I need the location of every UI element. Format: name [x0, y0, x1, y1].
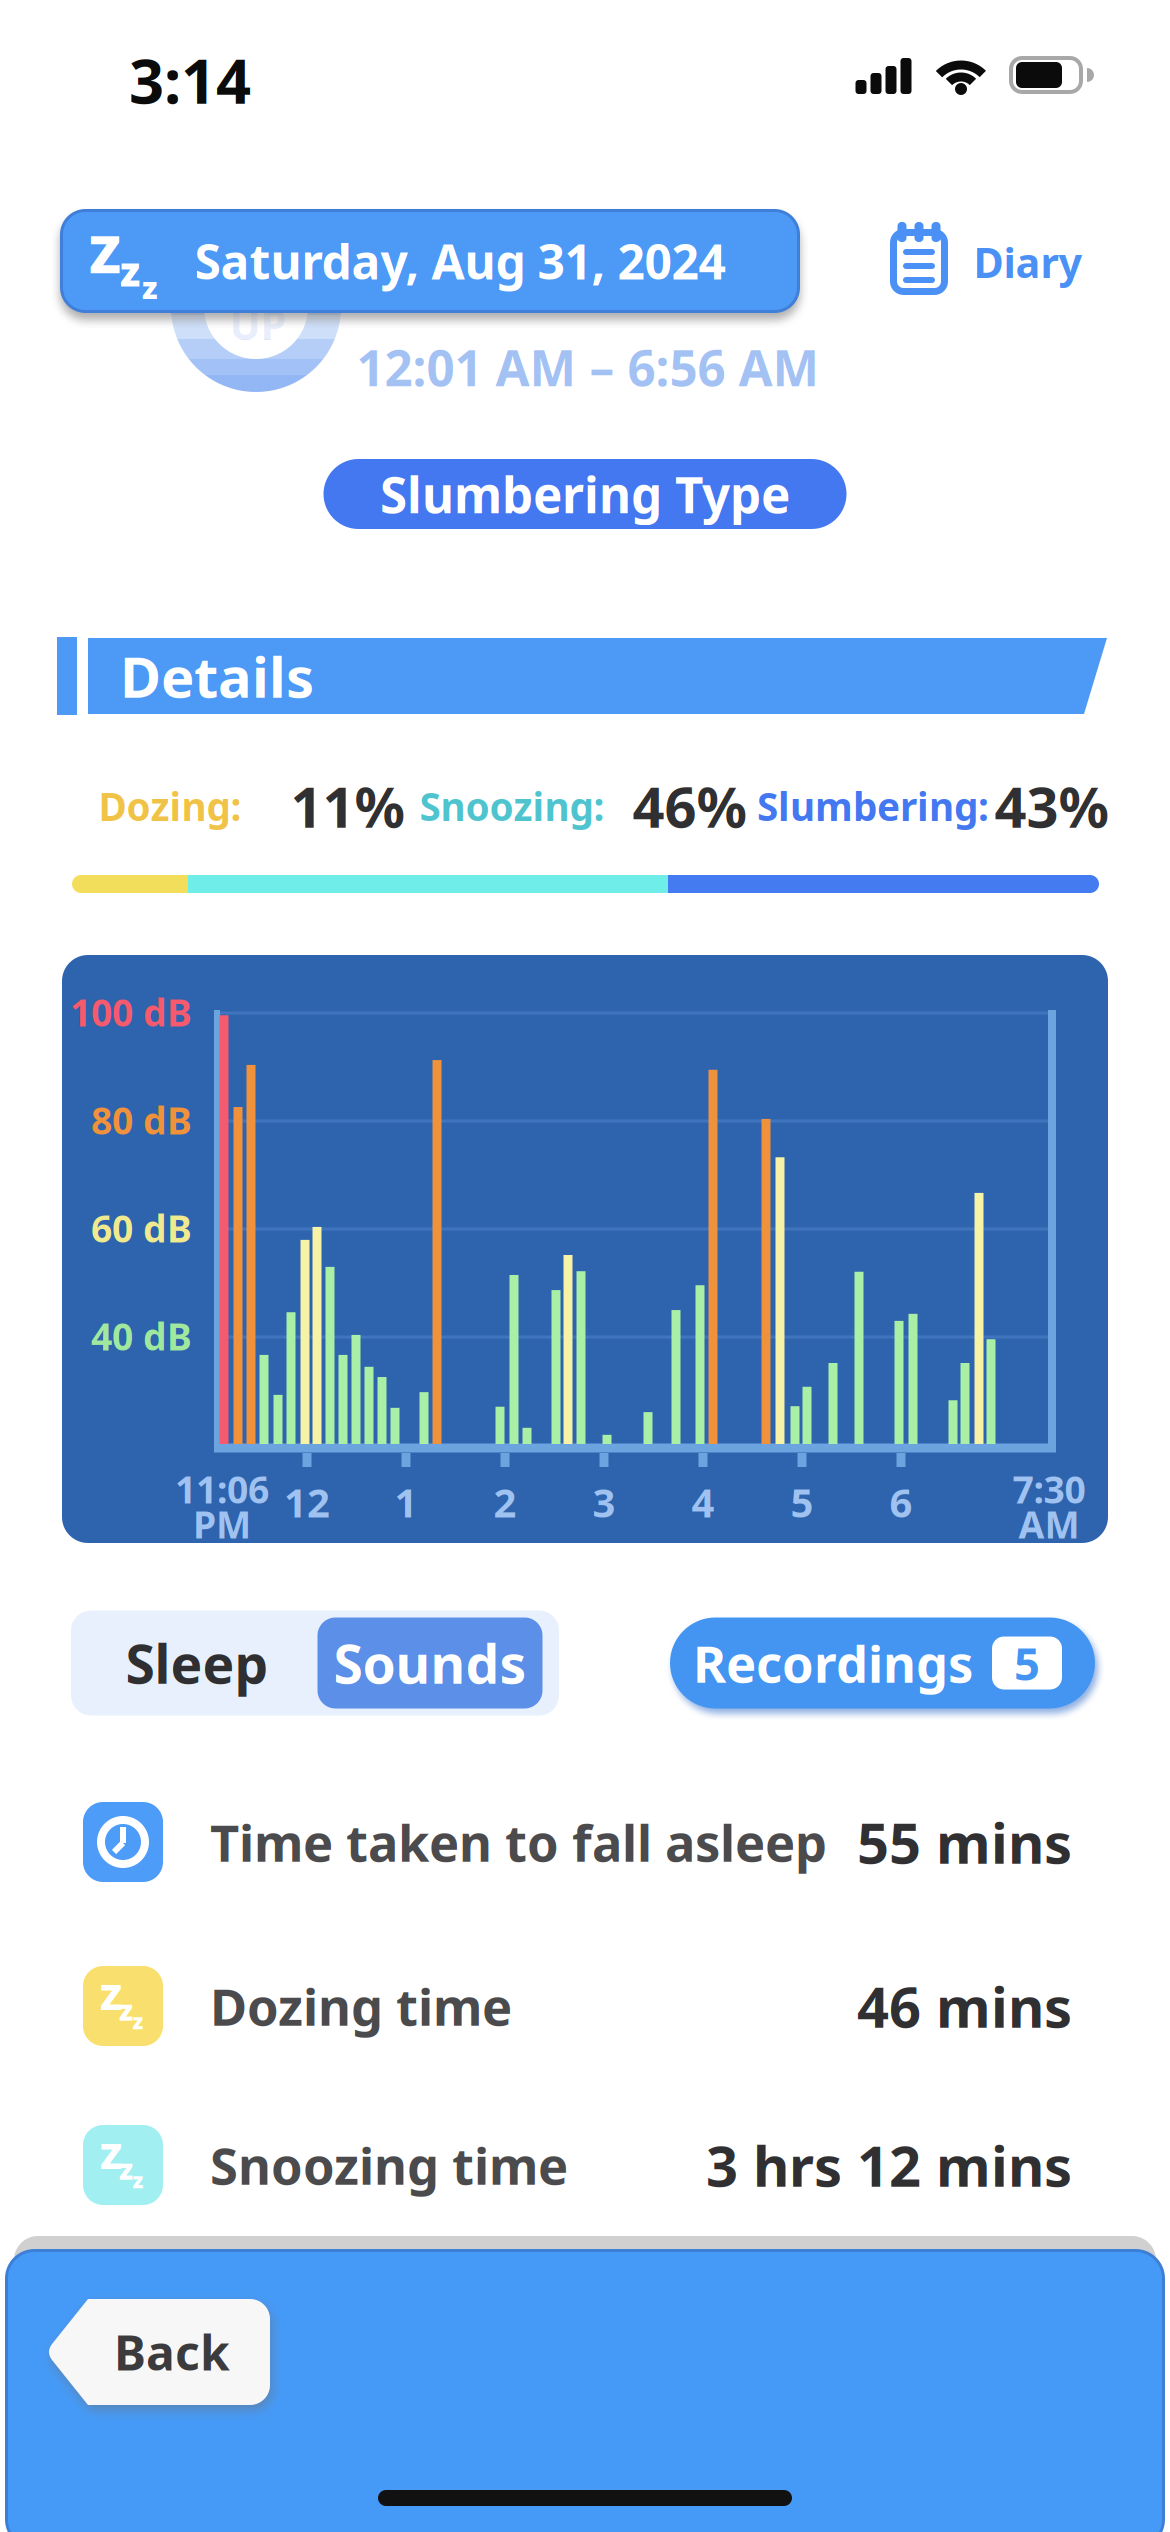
button[interactable]: Recordings	[670, 1617, 1095, 1708]
staticText: z	[119, 1991, 133, 2029]
staticText: Sleep	[125, 1628, 268, 1698]
staticText: Diary	[973, 235, 1082, 289]
staticText: 11:06	[175, 1464, 269, 1514]
staticText: 3 hrs 12 mins	[706, 2128, 1072, 2202]
staticText: Back	[114, 2320, 230, 2384]
staticText: 46 mins	[857, 1969, 1072, 2043]
staticText: z	[119, 2150, 133, 2188]
staticText: PM	[193, 1499, 251, 1549]
staticText: 100 dB	[70, 987, 192, 1037]
staticText: 5	[1014, 1633, 1040, 1693]
staticText: 3	[592, 1475, 615, 1528]
staticText: Time taken to fall asleep	[210, 1808, 827, 1876]
staticText: z	[142, 267, 158, 307]
staticText: Z	[100, 1972, 122, 2020]
staticText: 40 dB	[91, 1311, 192, 1361]
button[interactable]: Back	[48, 2299, 270, 2405]
staticText: 5	[790, 1475, 813, 1528]
button[interactable]: Diary	[880, 210, 1090, 310]
staticText: 80 dB	[91, 1095, 192, 1145]
staticText: Sounds	[333, 1628, 526, 1698]
button[interactable]: Slumbering Type	[323, 459, 846, 529]
staticText: Dozing time	[210, 1972, 512, 2040]
staticText: Saturday, Aug 31, 2024	[194, 229, 725, 293]
staticText: Z	[89, 218, 121, 288]
staticText: 1	[394, 1475, 417, 1528]
staticText: Snoozing:	[419, 780, 604, 832]
staticText: Z	[100, 2131, 122, 2179]
staticText: 12:01 AM – 6:56 AM	[356, 334, 819, 400]
staticText: AM	[1018, 1499, 1079, 1549]
staticText: Slumbering Type	[380, 461, 790, 527]
staticText: 6	[889, 1475, 912, 1528]
staticText: Recordings	[693, 1629, 973, 1697]
staticText: 43%	[994, 769, 1109, 843]
staticText: 3:14	[129, 39, 251, 121]
button[interactable]: Z	[60, 209, 800, 313]
staticText: 7:30	[1012, 1464, 1085, 1514]
button[interactable]: Sounds	[317, 1617, 542, 1708]
staticText: 2	[493, 1475, 516, 1528]
button[interactable]: Sleep	[77, 1610, 317, 1715]
staticText: Snoozing time	[210, 2131, 568, 2199]
staticText: Slumbering:	[757, 780, 989, 832]
staticText: 60 dB	[91, 1203, 192, 1253]
staticText: 55 mins	[857, 1805, 1072, 1879]
staticText: z	[120, 244, 140, 297]
staticText: 11%	[290, 769, 405, 843]
staticText: z	[132, 2166, 143, 2194]
staticText: Dozing:	[98, 780, 241, 832]
staticText: 46%	[632, 769, 747, 843]
staticText: UP	[229, 297, 286, 351]
staticText: 12	[284, 1475, 330, 1528]
staticText: z	[132, 2007, 143, 2035]
staticText: Details	[120, 639, 314, 713]
staticText: 4	[691, 1475, 714, 1528]
